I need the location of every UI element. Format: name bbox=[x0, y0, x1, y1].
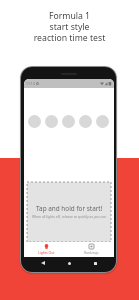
staticText: Rankings bbox=[84, 250, 99, 255]
button[interactable]: Home bbox=[62, 256, 76, 270]
staticText: When all lights off, release as quickly … bbox=[32, 214, 106, 218]
staticText: Tap and hold for start! bbox=[36, 204, 103, 213]
button[interactable]: Rankings bbox=[69, 242, 114, 257]
staticText: Lights Out bbox=[38, 250, 55, 255]
button[interactable]: Recent apps bbox=[88, 256, 102, 270]
button[interactable]: Lights Out bbox=[24, 242, 69, 257]
staticText: Formula 1 start style reaction time test bbox=[0, 10, 139, 44]
staticText: 11:14 bbox=[26, 81, 35, 86]
button[interactable]: Back bbox=[36, 256, 50, 270]
button[interactable]: Tap and hold for start! bbox=[27, 182, 111, 242]
